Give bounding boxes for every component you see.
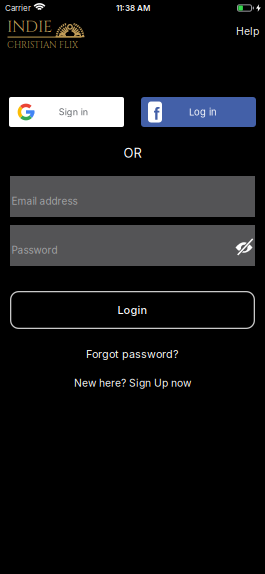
staticText: New here? Sign Up now — [74, 377, 191, 389]
button[interactable]: Help — [236, 16, 265, 37]
staticText: Login — [117, 303, 147, 317]
staticText: Carrier — [5, 3, 31, 13]
staticText: Password — [11, 244, 57, 256]
staticText: OR — [123, 145, 141, 161]
staticText: Email address — [11, 195, 77, 207]
staticText: CHRISTIAN FLIX — [7, 39, 78, 51]
button[interactable]: Forgot password? — [86, 347, 179, 361]
staticText: Sign in — [59, 107, 88, 117]
button[interactable]: New here? Sign Up now — [74, 375, 191, 391]
staticText: Help — [236, 25, 259, 37]
staticText: Forgot password? — [86, 347, 179, 361]
button[interactable]: Show password — [235, 239, 255, 251]
staticText: f — [153, 104, 159, 124]
button[interactable]: f — [141, 97, 256, 127]
staticText: 11:38 AM — [116, 3, 150, 13]
staticText: Log in — [189, 106, 217, 118]
button[interactable]: Login — [10, 291, 255, 329]
button[interactable]: Sign in — [9, 97, 124, 127]
staticText: INDIE — [7, 16, 52, 38]
